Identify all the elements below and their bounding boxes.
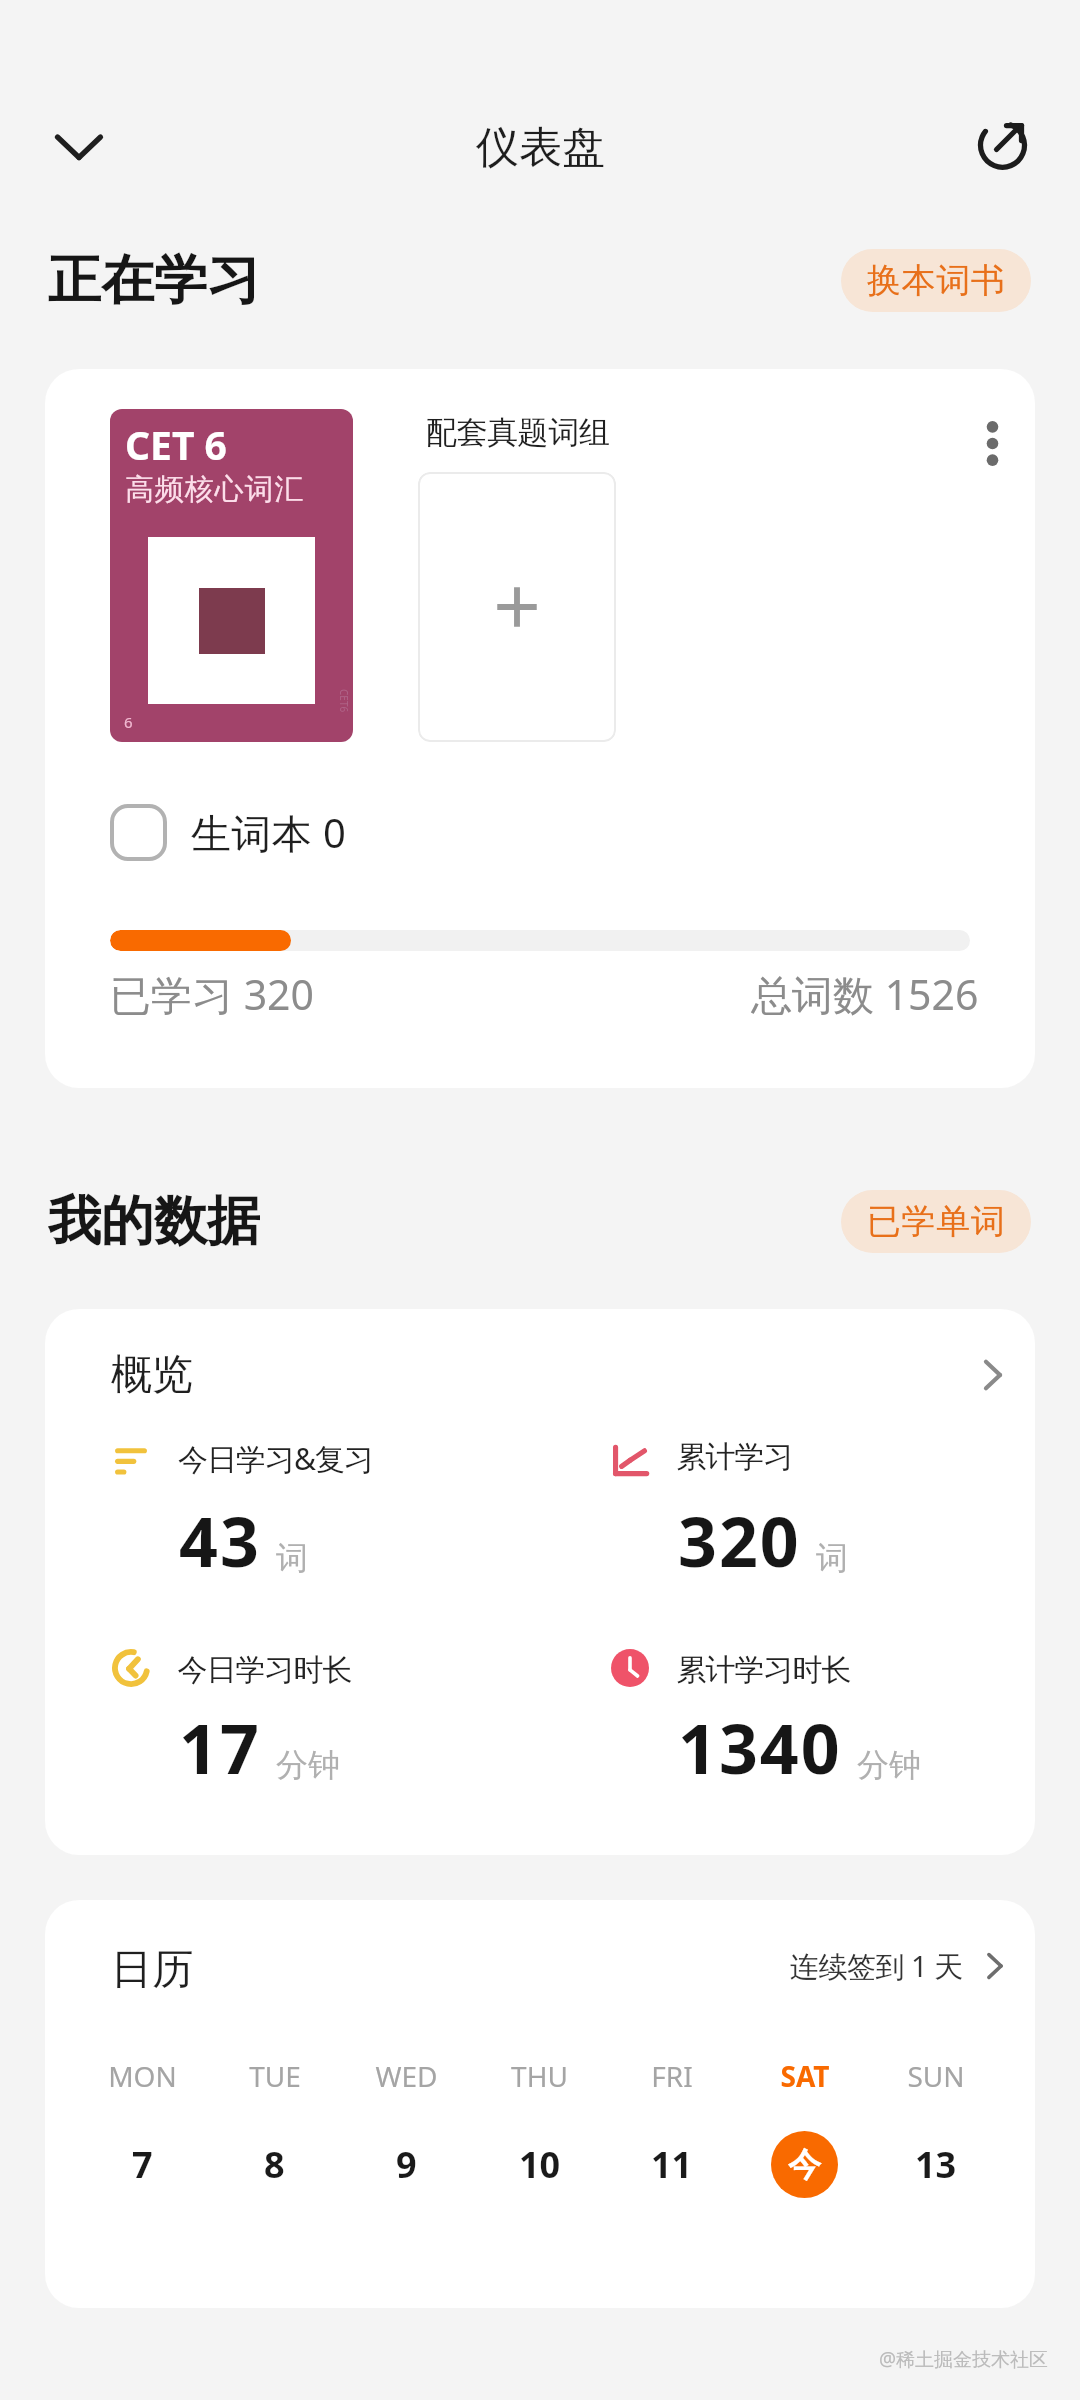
button[interactable]: 换本词书: [841, 249, 1031, 312]
staticText: 换本词书: [867, 259, 1006, 302]
staticText: 已学习 320: [110, 966, 315, 1022]
staticText: 今: [788, 2144, 821, 2186]
staticText: TUE: [249, 2057, 301, 2095]
staticText: 生词本 0: [191, 805, 347, 860]
staticText: 累计学习: [677, 1438, 793, 1476]
staticText: 10: [519, 2140, 561, 2189]
staticText: 已学单词: [867, 1200, 1006, 1243]
staticText: @稀土掘金技术社区: [879, 2346, 1049, 2372]
staticText: WED: [375, 2057, 438, 2095]
button[interactable]: SUN: [875, 2057, 995, 2242]
button[interactable]: CET 6 word book: [45, 369, 1035, 1088]
staticText: 7: [132, 2140, 153, 2189]
staticText: 累计学习时长: [677, 1651, 851, 1689]
staticText: 词: [276, 1538, 308, 1578]
button[interactable]: Share: [955, 107, 1051, 179]
button[interactable]: 日历: [45, 1900, 1035, 2040]
staticText: CET6: [337, 689, 351, 713]
button[interactable]: 概览: [45, 1309, 1035, 1440]
staticText: 17: [179, 1701, 261, 1794]
staticText: 配套真题词组: [426, 413, 610, 452]
staticText: 6: [124, 712, 133, 732]
staticText: 日历: [111, 1944, 193, 1996]
staticText: 今日学习&复习: [178, 1438, 373, 1479]
staticText: FRI: [651, 2057, 693, 2095]
staticText: 总词数 1526: [751, 966, 979, 1022]
button[interactable]: 生词本 0: [110, 804, 347, 861]
button[interactable]: WED: [346, 2057, 466, 2242]
staticText: 8: [264, 2140, 285, 2189]
staticText: CET 6: [125, 418, 227, 471]
staticText: 正在学习: [48, 247, 260, 313]
button[interactable]: More options: [962, 413, 1022, 473]
staticText: 我的数据: [48, 1188, 260, 1254]
staticText: MON: [108, 2057, 177, 2095]
staticText: 仪表盘: [476, 121, 605, 175]
staticText: 高频核心词汇: [125, 471, 305, 508]
staticText: 概览: [111, 1349, 193, 1401]
button[interactable]: Collapse: [31, 111, 127, 183]
button[interactable]: FRI: [611, 2057, 731, 2242]
button[interactable]: TUE: [214, 2057, 334, 2242]
button[interactable]: THU: [479, 2057, 599, 2242]
staticText: SAT: [780, 2057, 830, 2095]
staticText: 320: [678, 1494, 801, 1587]
staticText: 1340: [678, 1701, 842, 1794]
staticText: 词: [816, 1538, 848, 1578]
button[interactable]: SAT: [744, 2057, 864, 2242]
button[interactable]: Add word list: [418, 472, 616, 742]
button[interactable]: CET 6 word book: [110, 409, 353, 742]
staticText: 连续签到 1 天: [790, 1946, 963, 1986]
staticText: 今日学习时长: [178, 1651, 352, 1689]
staticText: 13: [915, 2140, 957, 2189]
button[interactable]: MON: [82, 2057, 202, 2242]
staticText: 11: [651, 2140, 693, 2189]
staticText: SUN: [907, 2057, 965, 2095]
staticText: 分钟: [276, 1745, 340, 1785]
button[interactable]: 已学单词: [841, 1190, 1031, 1253]
staticText: THU: [511, 2057, 568, 2095]
staticText: 分钟: [857, 1745, 921, 1785]
staticText: 9: [396, 2140, 417, 2189]
staticText: 43: [179, 1494, 261, 1587]
